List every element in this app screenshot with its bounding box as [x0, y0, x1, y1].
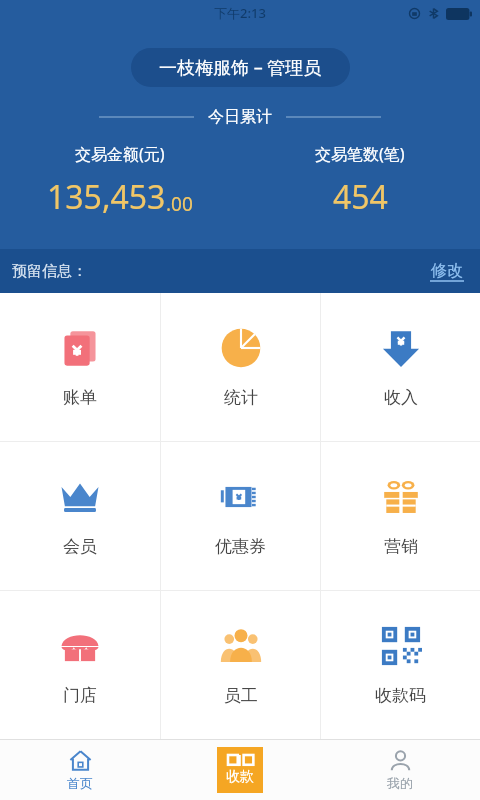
staticText: 员工	[224, 685, 258, 706]
other: 优惠券	[220, 476, 262, 518]
button[interactable]: 修改	[426, 257, 468, 286]
button[interactable]: 收款码	[321, 591, 480, 739]
other: 员工	[220, 625, 262, 667]
other: 会员	[59, 476, 101, 518]
other: 账单	[59, 327, 101, 369]
staticText: 预留信息：	[12, 262, 87, 281]
other: 收入	[380, 327, 422, 369]
button[interactable]: 优惠券	[161, 442, 320, 590]
staticText: 门店	[63, 685, 97, 706]
staticText: 优惠券	[215, 536, 266, 557]
staticText: 135,453	[47, 175, 166, 219]
button[interactable]: 营销	[321, 442, 480, 590]
staticText: 收款码	[375, 685, 426, 706]
staticText: 收款	[226, 768, 254, 786]
staticText: 账单	[63, 387, 97, 408]
other: 统计	[220, 327, 262, 369]
staticText: 统计	[224, 387, 258, 408]
button[interactable]: 会员	[0, 442, 160, 590]
other: 收款码	[380, 625, 422, 667]
staticText: 下午2:13	[214, 4, 266, 22]
other: 门店	[59, 625, 101, 667]
button[interactable]: 员工	[161, 591, 320, 739]
other: 营销	[380, 476, 422, 518]
staticText: 首页	[67, 775, 93, 791]
staticText: 454	[333, 175, 388, 219]
button[interactable]: 我的	[320, 740, 480, 800]
staticText: 交易金额(元)	[75, 143, 165, 165]
staticText: 会员	[63, 536, 97, 557]
staticText: 收入	[384, 387, 418, 408]
staticText: 营销	[384, 536, 418, 557]
staticText: 交易笔数(笔)	[315, 143, 405, 165]
button[interactable]: 收款	[217, 747, 263, 793]
staticText: .00	[166, 191, 193, 217]
button[interactable]: 账单	[0, 293, 160, 441]
button[interactable]: 首页	[0, 740, 160, 800]
staticText: 修改	[431, 261, 463, 281]
staticText: 今日累计	[208, 107, 272, 127]
staticText: 一枝梅服饰 – 管理员	[159, 55, 322, 80]
button[interactable]: 门店	[0, 591, 160, 739]
button[interactable]: 一枝梅服饰 – 管理员	[131, 48, 350, 87]
staticText: 我的	[387, 775, 413, 791]
button[interactable]: 收入	[321, 293, 480, 441]
other: 我的	[389, 749, 412, 772]
button[interactable]: 统计	[161, 293, 320, 441]
